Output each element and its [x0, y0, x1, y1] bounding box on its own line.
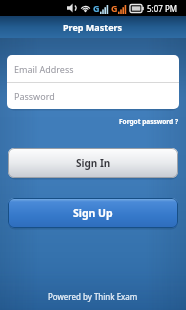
staticText: Password	[14, 90, 55, 102]
staticText: Email Address	[14, 63, 74, 75]
button[interactable]: Password	[7, 83, 179, 109]
staticText: Sign In	[76, 156, 111, 170]
staticText: Powered by Think Exam	[48, 291, 138, 302]
staticText: G	[93, 2, 100, 14]
staticText: Prep Masters	[63, 21, 123, 33]
button[interactable]: Email Address	[7, 55, 179, 82]
button[interactable]: Sign Up	[8, 198, 178, 228]
button[interactable]: Forgot password ?	[119, 117, 186, 126]
staticText: 5:07 PM	[147, 3, 178, 14]
staticText: Sign Up	[73, 206, 113, 220]
staticText: G	[111, 2, 118, 14]
button[interactable]: Sign In	[8, 148, 178, 178]
staticText: Forgot password ?	[119, 117, 178, 126]
